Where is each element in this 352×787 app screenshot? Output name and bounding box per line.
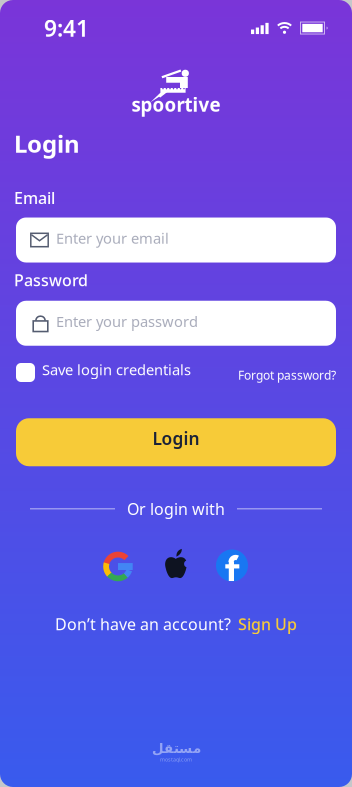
staticText: Email [14,187,55,208]
button[interactable]: Sign Up [238,613,297,635]
staticText: Login [152,427,199,450]
staticText: مستقل [151,741,200,756]
button[interactable]: Login with Google [103,551,133,581]
staticText: Enter your password [56,311,198,331]
staticText: Sign Up [238,613,297,635]
staticText: Forgot password? [238,367,336,383]
staticText: Password [14,269,88,291]
staticText: 9:41 [44,13,89,43]
staticText: Don’t have an account? [55,613,231,635]
staticText: Enter your email [56,228,169,248]
button[interactable]: Forgot password? [238,364,336,380]
button[interactable]: Enter your password [16,301,336,346]
staticText: mostaql.com [160,756,192,763]
staticText: spoortive [131,92,220,117]
button[interactable]: Login with Apple [161,551,191,581]
button[interactable]: Login with Facebook [219,551,249,581]
button[interactable]: Save login credentials [16,363,191,382]
staticText: Save login credentials [42,360,191,379]
button[interactable]: Login [16,418,336,466]
button[interactable]: Enter your email [16,217,336,262]
staticText: Or login with [127,498,225,519]
staticText: Login [14,127,80,159]
